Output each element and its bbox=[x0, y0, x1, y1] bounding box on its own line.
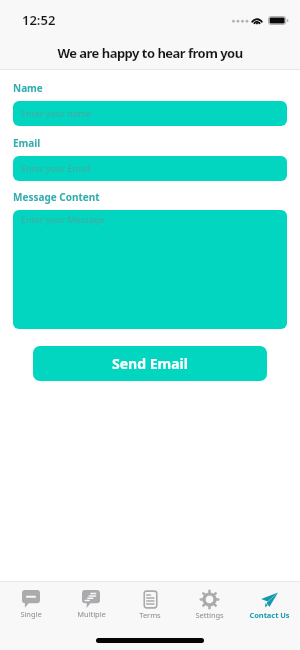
staticText: Settings bbox=[195, 610, 224, 620]
staticText: Enter your Email bbox=[21, 163, 91, 175]
button[interactable]: Contact Us bbox=[241, 590, 297, 620]
button[interactable]: Enter your Message bbox=[13, 210, 287, 329]
staticText: Send Email bbox=[112, 354, 188, 373]
button[interactable]: Multiple bbox=[63, 590, 119, 619]
staticText: Enter your Message bbox=[21, 214, 105, 226]
button[interactable]: Enter your Email bbox=[13, 156, 287, 181]
button[interactable]: Settings bbox=[181, 590, 237, 620]
staticText: Enter your name bbox=[21, 108, 92, 120]
staticText: Single bbox=[20, 609, 42, 619]
staticText: Terms bbox=[139, 610, 161, 620]
staticText: Multiple bbox=[77, 609, 106, 619]
staticText: Message Content bbox=[13, 190, 100, 204]
staticText: Name bbox=[13, 81, 43, 95]
staticText: Email bbox=[13, 136, 41, 150]
button[interactable]: Send Email bbox=[33, 346, 267, 381]
button[interactable]: Enter your name bbox=[13, 101, 287, 126]
staticText: We are happy to hear from you bbox=[57, 44, 243, 62]
staticText: Contact Us bbox=[249, 610, 290, 620]
button[interactable]: Single bbox=[3, 590, 59, 619]
button[interactable]: Terms bbox=[122, 590, 178, 620]
staticText: 12:52 bbox=[22, 11, 56, 29]
